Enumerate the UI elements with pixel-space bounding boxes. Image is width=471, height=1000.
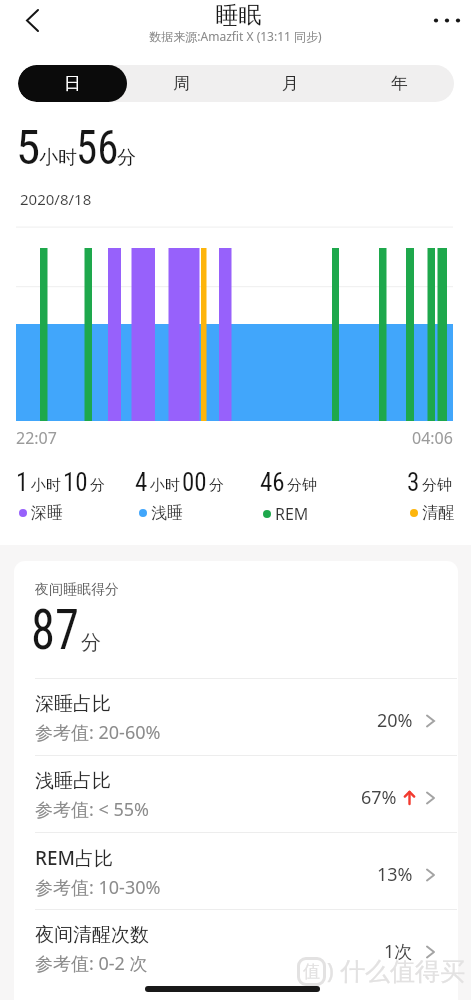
staticText: 浅睡 [151, 503, 183, 523]
staticText: 3 [407, 468, 420, 497]
button[interactable]: 深睡占比 [0, 679, 471, 756]
staticText: 清醒 [422, 503, 454, 523]
staticText: 87 [31, 598, 80, 662]
staticText: 参考值: < 55% [35, 797, 150, 822]
staticText: 13% [377, 862, 413, 887]
button[interactable] [424, 8, 468, 34]
staticText: 22:07 [16, 427, 57, 449]
staticText: 04:06 [412, 427, 453, 449]
staticText: ) [327, 957, 334, 986]
staticText: 年 [391, 73, 408, 94]
button[interactable]: 浅睡占比 [0, 756, 471, 833]
button[interactable] [18, 4, 48, 38]
staticText: 46 [260, 468, 285, 497]
button[interactable]: 日 [18, 65, 127, 102]
staticText: 夜间睡眠得分 [35, 581, 119, 599]
staticText: 2020/8/18 [20, 189, 92, 209]
button[interactable]: REM占比 [0, 833, 471, 910]
staticText: 20% [377, 708, 413, 733]
staticText: 分钟 [422, 476, 452, 495]
button[interactable]: 月 [236, 65, 345, 102]
staticText: 周 [173, 73, 190, 94]
staticText: 67% [361, 785, 397, 810]
staticText: 10 [63, 468, 88, 497]
staticText: 浅睡占比 [35, 769, 111, 793]
button[interactable]: 周 [127, 65, 236, 102]
staticText: 参考值: 20-60% [35, 720, 161, 745]
staticText: 值 [303, 961, 320, 982]
staticText: 小时 [31, 476, 61, 495]
staticText: 分钟 [287, 476, 317, 495]
staticText: 参考值: 0-2 次 [35, 951, 148, 976]
staticText: 分 [90, 476, 105, 495]
staticText: 参考值: 10-30% [35, 875, 161, 900]
staticText: 什么值得买 [340, 956, 465, 987]
staticText: 00 [182, 468, 207, 497]
staticText: 小时 [150, 476, 180, 495]
staticText: 月 [282, 73, 299, 94]
staticText: 小时 [39, 146, 77, 170]
staticText: 4 [135, 468, 148, 497]
staticText: 夜间清醒次数 [35, 923, 149, 947]
staticText: 56 [76, 119, 119, 176]
staticText: REM [275, 503, 309, 525]
staticText: 5 [16, 119, 41, 176]
button[interactable]: 夜间清醒次数 [0, 910, 471, 987]
staticText: REM占比 [35, 845, 114, 871]
staticText: 睡眠 [3, 1, 471, 30]
staticText: 深睡 [31, 503, 63, 523]
staticText: 数据来源:Amazfit X (13:11 同步) [0, 28, 471, 44]
staticText: 深睡占比 [35, 692, 111, 716]
staticText: 分 [117, 146, 136, 170]
staticText: 1 [16, 468, 29, 497]
staticText: 分 [81, 630, 101, 655]
button[interactable]: 年 [345, 65, 454, 102]
staticText: 分 [209, 476, 224, 495]
staticText: 日 [64, 73, 81, 94]
staticText: 1次 [384, 939, 413, 964]
